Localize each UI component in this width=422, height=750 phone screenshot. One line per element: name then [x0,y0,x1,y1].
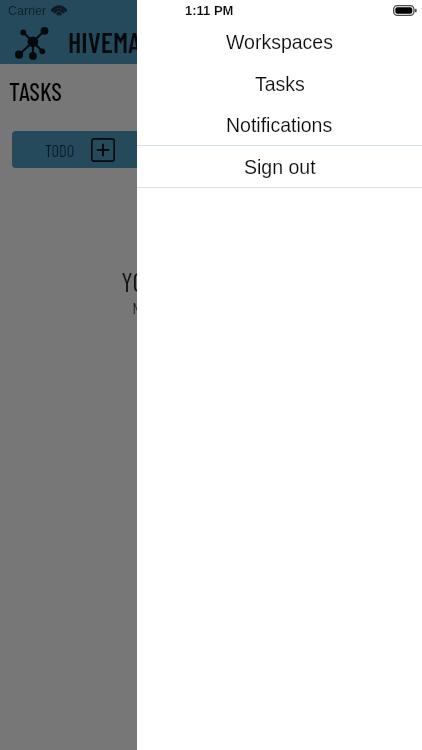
staticText: Workspaces [226,31,333,53]
other: Battery full [393,5,417,16]
staticText: YOU HAVE NO TASKS [121,265,301,297]
staticText: HIVEMANAGER [68,25,206,59]
staticText: No tasks have been assigned [132,298,290,317]
button[interactable]: Close menu [0,64,422,750]
button[interactable]: Sign out [137,146,422,187]
button[interactable]: Workspaces [137,21,422,63]
button[interactable]: TODO [12,131,148,168]
button[interactable]: Notifications [137,104,422,145]
staticText: 1:11 PM [185,3,234,18]
staticText: Sign out [244,156,316,178]
staticText: Tasks [255,73,305,95]
staticText: Notifications [226,114,333,136]
staticText: TODO [45,140,75,160]
staticText: TASKS [9,76,62,106]
button[interactable]: Tasks [137,63,422,104]
staticText: Carrier [8,4,47,18]
